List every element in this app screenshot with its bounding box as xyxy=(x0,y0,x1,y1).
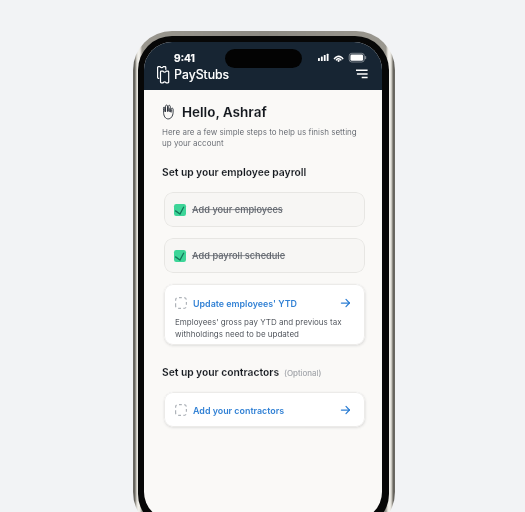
button[interactable]: Add payroll schedule xyxy=(164,238,365,273)
staticText: Employees' gross pay YTD and previous ta… xyxy=(175,317,350,339)
staticText: Hello, Ashraf xyxy=(182,104,267,120)
staticText: Here are a few simple steps to help us f… xyxy=(162,127,362,148)
staticText: Set up your employee payroll xyxy=(162,166,307,178)
staticText: 9:41 xyxy=(174,52,195,65)
staticText: Add your contractors xyxy=(193,405,285,416)
button[interactable]: Add your contractors xyxy=(164,392,365,427)
staticText: Set up your contractors xyxy=(162,366,280,378)
staticText: Update employees' YTD xyxy=(193,298,297,309)
staticText: Add payroll schedule xyxy=(192,250,286,261)
button[interactable]: Update employees' YTD xyxy=(164,284,365,345)
staticText: Add your employees xyxy=(192,204,283,215)
staticText: (Optional) xyxy=(284,368,322,378)
button[interactable]: Open menu xyxy=(349,66,371,83)
button[interactable]: Add your employees xyxy=(164,192,365,227)
staticText: PayStubs xyxy=(174,67,230,82)
